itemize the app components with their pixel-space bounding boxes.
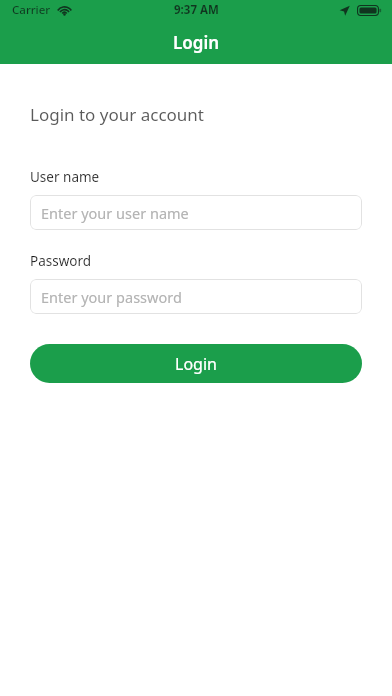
staticText: User name [30,168,100,186]
button[interactable]: Enter your user name [30,195,362,230]
other: Location services active [339,5,350,16]
staticText: Carrier [12,2,51,18]
staticText: Login to your account [30,103,204,126]
staticText: Login [173,31,220,54]
other: Battery full [357,5,382,16]
staticText: Password [30,252,92,270]
staticText: 9:37 AM [174,2,219,18]
button[interactable]: Enter your password [30,279,362,314]
staticText: Login [175,353,217,375]
staticText: Enter your password [41,287,182,307]
other: Wi-Fi signal [57,5,72,16]
staticText: Enter your user name [41,203,189,223]
button[interactable]: Login [30,344,362,383]
